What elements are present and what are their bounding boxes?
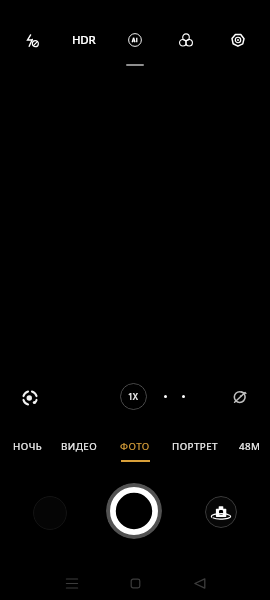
button[interactable]: Flash off [16,24,48,56]
staticText: ВИДЕО [61,440,98,453]
staticText: НОЧЬ [13,440,43,453]
button[interactable]: НОЧЬ [0,437,58,465]
button[interactable]: AI scene detection [15,383,45,413]
button[interactable]: Recent apps [54,569,90,597]
button[interactable]: Beauty filter [224,381,254,411]
button[interactable]: Gallery [33,496,67,530]
button[interactable]: Home [117,569,153,597]
button[interactable]: Settings [222,24,254,56]
button[interactable]: Zoom 2x [164,395,167,398]
button[interactable]: HDR [58,26,110,54]
button[interactable]: 1X [120,383,147,410]
button[interactable]: Zoom 5x [182,395,185,398]
staticText: 48M [239,440,261,453]
button[interactable]: Color filters [170,24,202,56]
button[interactable]: ВИДЕО [49,437,109,465]
button[interactable]: Switch camera [205,496,237,528]
staticText: HDR [72,32,96,48]
button[interactable]: Take photo [106,483,162,539]
button[interactable]: ФОТО [105,437,165,465]
staticText: ФОТО [120,440,150,453]
staticText: 1X [128,391,139,403]
button[interactable]: Expand settings [126,64,144,66]
button[interactable]: Back [182,569,218,597]
staticText: ПОРТРЕТ [172,440,218,453]
button[interactable]: ПОРТРЕТ [165,437,225,465]
button[interactable]: AI scene mode [119,24,151,56]
button[interactable]: 48M [220,437,270,465]
